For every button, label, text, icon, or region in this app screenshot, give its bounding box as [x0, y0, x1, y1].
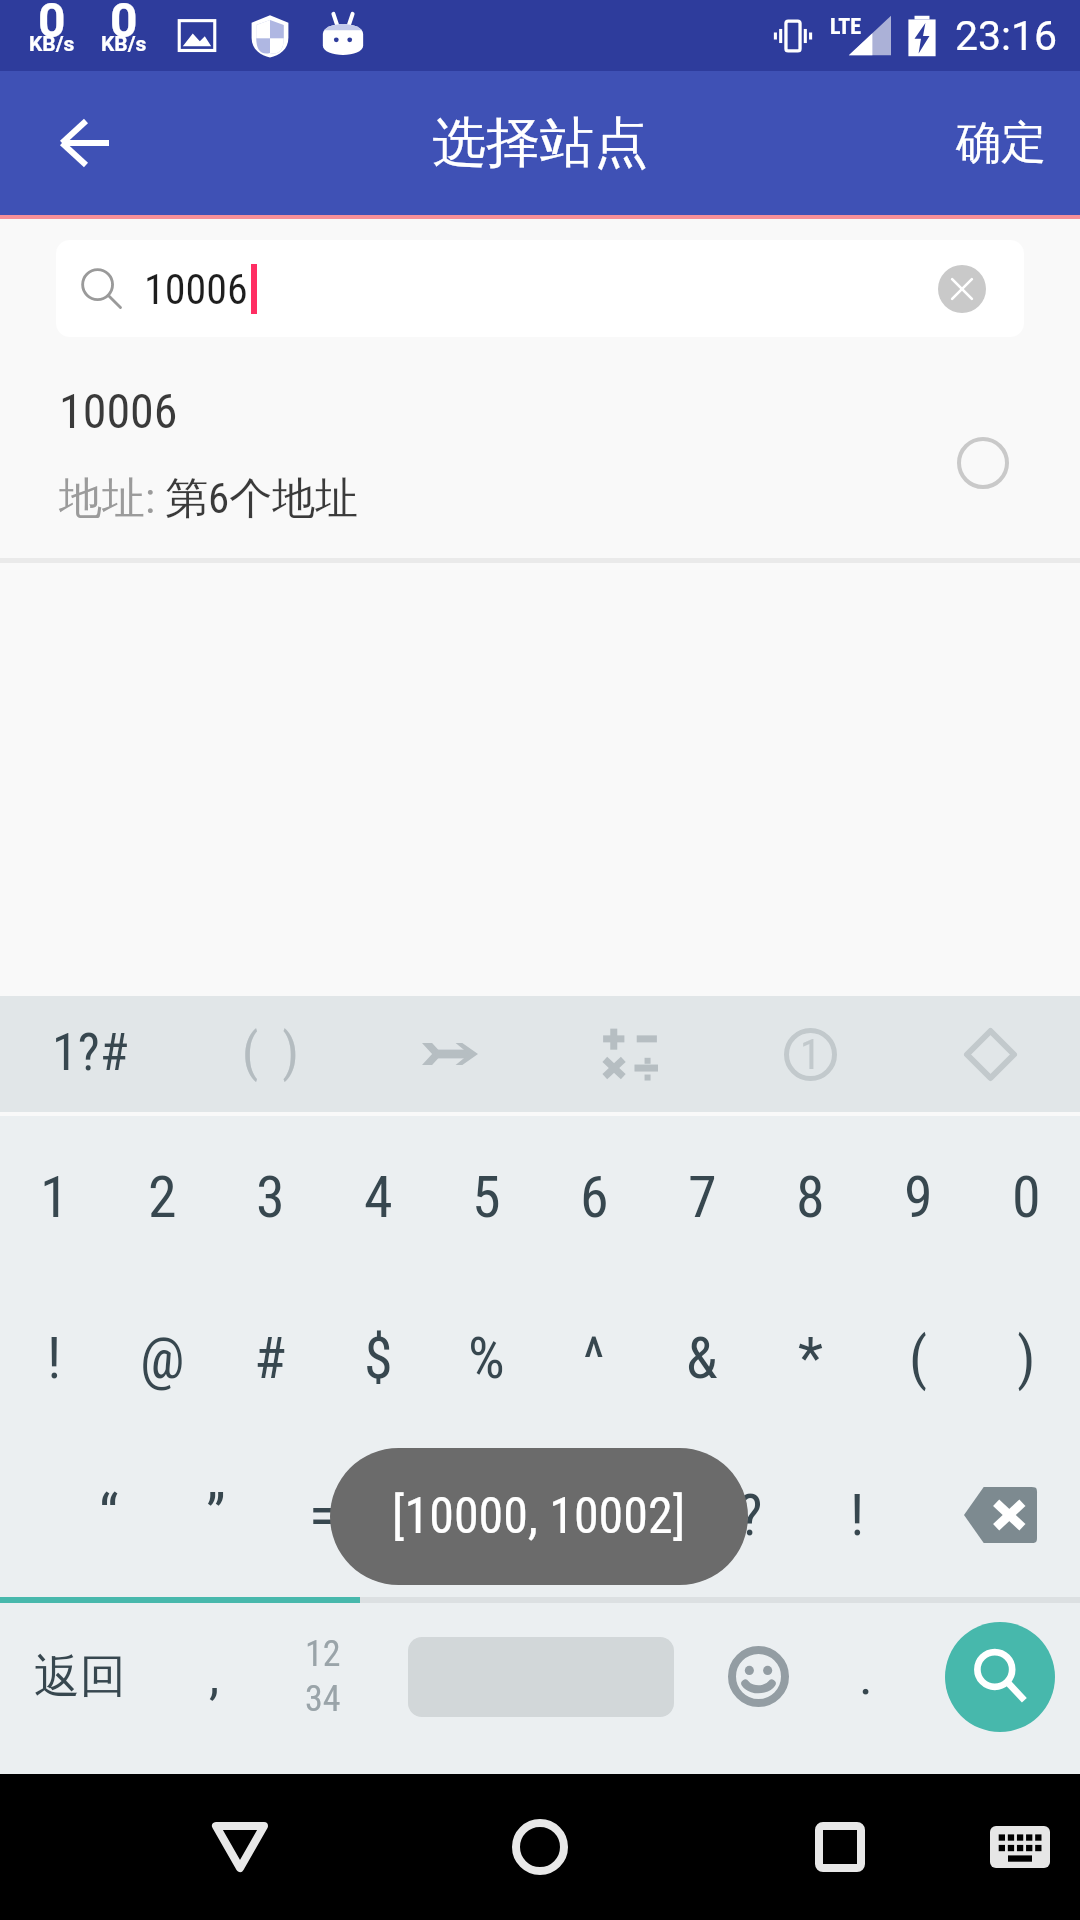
staticText: ( ): [242, 1022, 299, 1083]
button[interactable]: =: [269, 1455, 376, 1575]
staticText: ?: [738, 1481, 763, 1549]
button[interactable]: Symbols: [0, 996, 180, 1112]
staticText: !: [850, 1481, 865, 1549]
button[interactable]: /: [483, 1455, 590, 1575]
staticText: 3: [256, 1163, 285, 1231]
button[interactable]: %: [432, 1298, 540, 1418]
button[interactable]: Brackets: [180, 996, 360, 1112]
staticText: 23:16: [955, 12, 1058, 60]
staticText: 第6个地址: [165, 472, 359, 526]
button[interactable]: Emoji: [704, 1599, 812, 1754]
button[interactable]: “: [55, 1455, 162, 1575]
staticText: ): [1017, 1324, 1036, 1392]
staticText: /: [526, 1481, 548, 1549]
button[interactable]: ): [972, 1298, 1080, 1418]
staticText: 4: [364, 1163, 393, 1231]
staticText: 1?#: [52, 1022, 129, 1083]
staticText: @: [140, 1324, 185, 1392]
staticText: *: [798, 1324, 823, 1392]
button[interactable]: Number pad: [268, 1599, 378, 1754]
staticText: :: [637, 1481, 651, 1549]
button[interactable]: Return: [0, 1599, 160, 1754]
button[interactable]: Numbers: [720, 996, 900, 1112]
button[interactable]: 10006: [56, 240, 1024, 337]
button[interactable]: Period: [812, 1599, 920, 1754]
staticText: 1: [800, 1030, 821, 1079]
staticText: 2: [148, 1163, 177, 1231]
staticText: #: [254, 1324, 286, 1392]
staticText: KB/s: [29, 32, 75, 57]
button[interactable]: *: [756, 1298, 864, 1418]
staticText: 9: [904, 1163, 933, 1231]
staticText: 确定: [956, 115, 1046, 172]
button[interactable]: Hide keyboard: [180, 1787, 300, 1907]
staticText: ”: [206, 1481, 226, 1549]
staticText: 返回: [34, 1648, 126, 1706]
staticText: 10006: [144, 265, 248, 314]
button[interactable]: Recents: [780, 1787, 900, 1907]
staticText: &: [686, 1324, 718, 1392]
staticText: $: [364, 1324, 393, 1392]
button[interactable]: Space: [378, 1599, 704, 1754]
button[interactable]: ^: [540, 1298, 648, 1418]
button[interactable]: 1: [0, 1137, 108, 1257]
button[interactable]: ?: [697, 1455, 804, 1575]
staticText: ^: [583, 1324, 605, 1392]
staticText: 0: [1012, 1163, 1041, 1231]
button[interactable]: Search: [920, 1599, 1080, 1754]
staticText: 12: [305, 1633, 341, 1675]
button[interactable]: 8: [756, 1137, 864, 1257]
button[interactable]: 确定: [922, 89, 1080, 198]
staticText: [10000, 10002]: [392, 1487, 686, 1546]
button[interactable]: :: [590, 1455, 697, 1575]
button[interactable]: Backspace: [946, 1455, 1054, 1575]
staticText: LTE: [830, 14, 862, 40]
button[interactable]: 6: [540, 1137, 648, 1257]
button[interactable]: @: [108, 1298, 216, 1418]
button[interactable]: &: [648, 1298, 756, 1418]
staticText: !: [47, 1324, 62, 1392]
staticText: “: [99, 1481, 119, 1549]
button[interactable]: ·: [376, 1455, 483, 1575]
button[interactable]: (: [864, 1298, 972, 1418]
button[interactable]: Arrow: [360, 996, 540, 1112]
button[interactable]: $: [324, 1298, 432, 1418]
staticText: .: [859, 1646, 873, 1707]
staticText: 34: [305, 1678, 341, 1720]
staticText: KB/s: [101, 32, 147, 57]
button[interactable]: Switch keyboard: [970, 1797, 1070, 1897]
button[interactable]: ”: [162, 1455, 269, 1575]
button[interactable]: Comma: [160, 1599, 268, 1754]
button[interactable]: 0: [972, 1137, 1080, 1257]
button[interactable]: 7: [648, 1137, 756, 1257]
staticText: 0: [110, 0, 138, 48]
staticText: 7: [688, 1163, 717, 1231]
button[interactable]: !: [804, 1455, 911, 1575]
button[interactable]: #: [216, 1298, 324, 1418]
button[interactable]: Back: [30, 89, 138, 197]
button[interactable]: 3: [216, 1137, 324, 1257]
staticText: (: [909, 1324, 928, 1392]
button[interactable]: 10006: [0, 363, 1080, 563]
staticText: =: [309, 1481, 337, 1549]
staticText: 1: [40, 1163, 69, 1231]
staticText: 5: [472, 1163, 501, 1231]
button[interactable]: Home: [480, 1787, 600, 1907]
staticText: ,: [209, 1646, 220, 1707]
button[interactable]: 2: [108, 1137, 216, 1257]
staticText: 0: [38, 0, 66, 48]
button[interactable]: 9: [864, 1137, 972, 1257]
button[interactable]: !: [0, 1298, 108, 1418]
button[interactable]: Clear text: [938, 265, 986, 313]
staticText: 6: [580, 1163, 609, 1231]
button[interactable]: Shapes: [900, 996, 1080, 1112]
staticText: ·: [422, 1481, 437, 1549]
button[interactable]: 5: [432, 1137, 540, 1257]
staticText: 10006: [59, 383, 178, 439]
button[interactable]: 4: [324, 1137, 432, 1257]
staticText: 8: [796, 1163, 825, 1231]
staticText: 选择站点: [432, 109, 648, 177]
button[interactable]: Math symbols: [540, 996, 720, 1112]
staticText: 地址:: [59, 472, 165, 526]
staticText: %: [468, 1324, 505, 1392]
